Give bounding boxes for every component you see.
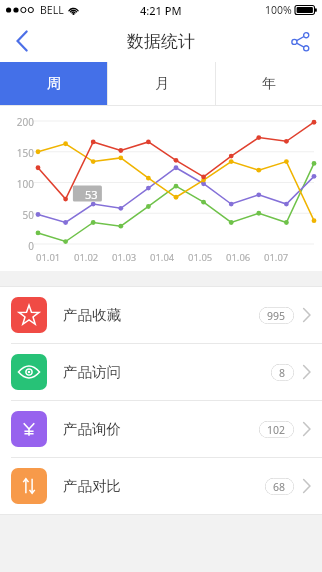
staticText: 01.04	[150, 251, 175, 264]
staticText: 4:21 PM	[140, 3, 182, 18]
staticText: 月	[155, 75, 169, 93]
staticText: 产品对比	[63, 477, 121, 495]
staticText: 200	[6, 115, 34, 127]
staticText: 100%	[265, 3, 292, 17]
staticText: 102	[267, 423, 286, 437]
button[interactable]: 年	[216, 62, 322, 105]
staticText: 产品访问	[63, 363, 121, 381]
staticText: 01.02	[74, 251, 99, 264]
staticText: 年	[262, 75, 276, 93]
button[interactable]: 月	[108, 62, 215, 105]
button[interactable]: 产品访问	[0, 344, 322, 400]
button[interactable]: 产品对比	[0, 458, 322, 514]
staticText: 8	[279, 366, 286, 380]
staticText: 产品询价	[63, 420, 121, 438]
button[interactable]: 周	[0, 62, 107, 105]
staticText: 01.05	[188, 251, 213, 264]
staticText: 01.06	[226, 251, 251, 264]
staticText: 0	[6, 239, 34, 251]
staticText: 01.01	[36, 251, 61, 264]
staticText: 68	[273, 480, 286, 494]
button[interactable]: Share	[278, 20, 322, 62]
staticText: 50	[6, 208, 34, 220]
staticText: 100	[6, 177, 34, 189]
staticText: 150	[6, 146, 34, 158]
button[interactable]: 产品询价	[0, 401, 322, 457]
staticText: 01.07	[264, 251, 289, 264]
staticText: BELL	[40, 3, 64, 17]
staticText: 产品收藏	[63, 306, 121, 324]
staticText: 53	[85, 187, 98, 202]
button[interactable]: 产品收藏	[0, 287, 322, 343]
staticText: 995	[267, 309, 286, 323]
staticText: 数据统计	[127, 31, 195, 52]
staticText: 01.03	[112, 251, 137, 264]
staticText: 周	[47, 75, 61, 93]
button[interactable]: Back	[0, 20, 44, 62]
